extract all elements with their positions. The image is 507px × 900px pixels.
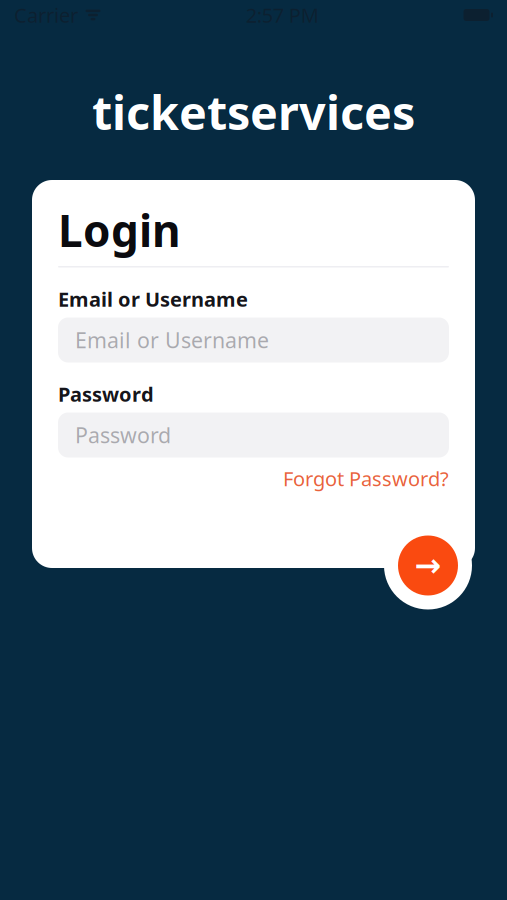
staticText: 2:57 PM	[246, 2, 319, 28]
staticText: Email or Username	[58, 286, 248, 312]
staticText: Login	[58, 201, 181, 259]
button[interactable]: Password	[58, 412, 449, 457]
staticText: ticketservices	[92, 81, 415, 143]
button[interactable]: Email or Username	[58, 317, 449, 362]
staticText: Password	[75, 421, 171, 449]
staticText: Forgot Password?	[283, 465, 449, 492]
staticText: Carrier	[14, 2, 78, 28]
staticText: →	[414, 547, 441, 584]
staticText: Email or Username	[75, 326, 269, 354]
button[interactable]: Sign in	[384, 521, 472, 609]
button[interactable]: Forgot Password?	[283, 467, 449, 489]
staticText: Password	[58, 381, 154, 407]
